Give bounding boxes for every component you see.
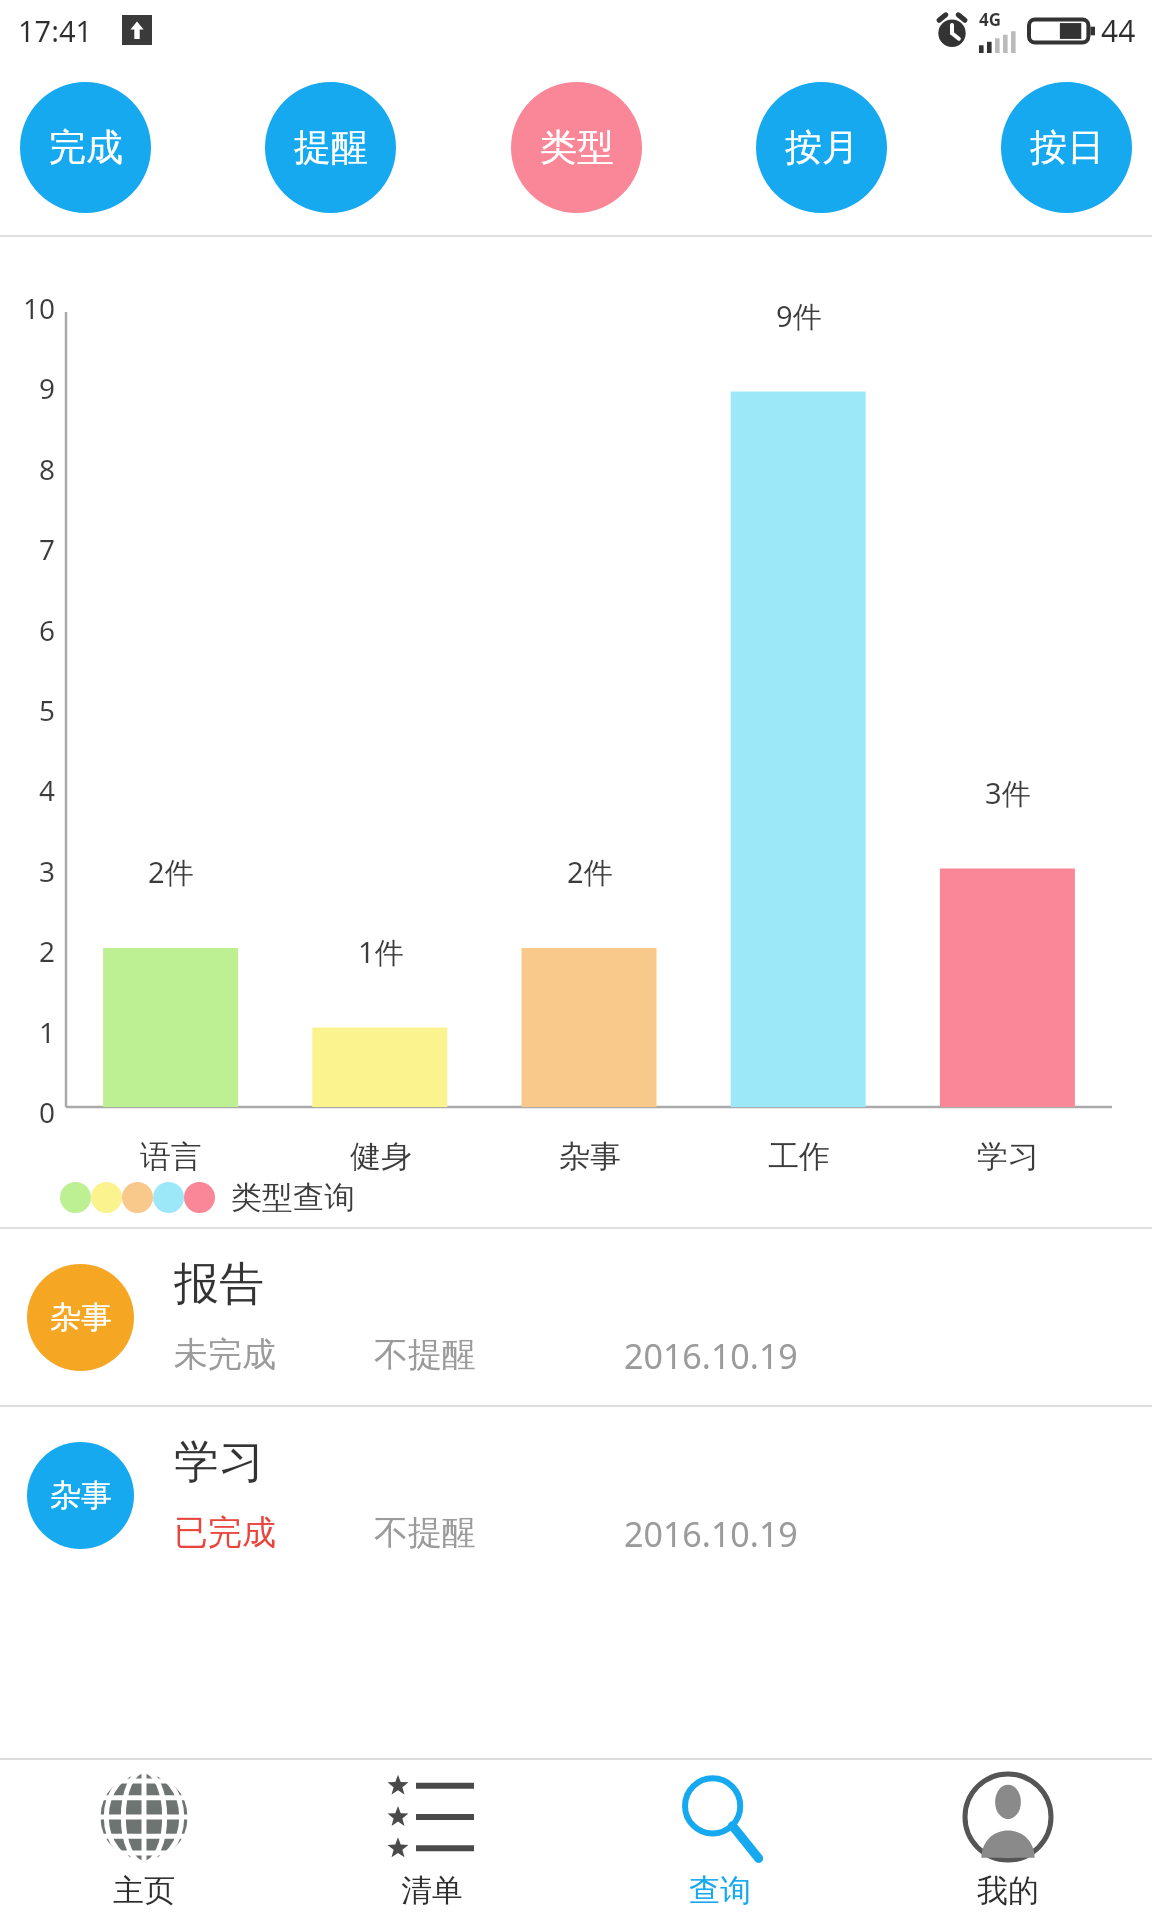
button[interactable]: 类型 <box>511 82 642 213</box>
staticText: 不提醒 <box>374 1333 624 1376</box>
staticText: 1件 <box>358 932 404 972</box>
button[interactable]: 按月 <box>756 82 887 213</box>
staticText: 2016.10.19 <box>624 1333 798 1379</box>
staticText: 工作 <box>768 1137 830 1176</box>
staticText: 4G <box>979 8 1002 31</box>
staticText: 健身 <box>350 1137 412 1176</box>
staticText: 8 <box>39 450 56 488</box>
button[interactable]: 按日 <box>1001 82 1132 213</box>
button[interactable]: 完成 <box>20 82 151 213</box>
button[interactable]: 清单 <box>288 1760 576 1920</box>
staticText: 杂事 <box>50 1298 112 1337</box>
staticText: 按月 <box>785 124 859 171</box>
staticText: 类型 <box>540 124 614 171</box>
button[interactable]: 提醒 <box>265 82 396 213</box>
staticText: 类型查询 <box>231 1178 355 1217</box>
staticText: 清单 <box>401 1871 463 1910</box>
staticText: 报告 <box>174 1256 264 1313</box>
staticText: 3件 <box>985 773 1031 813</box>
staticText: 3 <box>39 852 56 890</box>
staticText: 6 <box>39 611 56 649</box>
staticText: 2016.10.19 <box>624 1511 798 1557</box>
staticText: 7 <box>39 530 56 568</box>
button[interactable]: 杂事 <box>0 1229 1152 1405</box>
staticText: 语言 <box>140 1137 202 1176</box>
staticText: 我的 <box>977 1871 1039 1910</box>
staticText: 查询 <box>689 1871 751 1910</box>
staticText: 已完成 <box>174 1511 374 1554</box>
staticText: 提醒 <box>294 124 368 171</box>
staticText: 9 <box>39 369 56 407</box>
staticText: 未完成 <box>174 1333 374 1376</box>
staticText: 完成 <box>49 124 123 171</box>
staticText: 9件 <box>776 296 822 336</box>
staticText: 2件 <box>567 852 613 892</box>
staticText: 杂事 <box>559 1137 621 1176</box>
button[interactable]: 杂事 <box>0 1407 1152 1583</box>
button[interactable]: 查询 <box>576 1760 864 1920</box>
staticText: 按日 <box>1030 124 1104 171</box>
staticText: 10 <box>23 289 56 327</box>
staticText: 学习 <box>174 1434 264 1491</box>
staticText: 1 <box>39 1013 56 1051</box>
staticText: 5 <box>39 691 56 729</box>
staticText: 不提醒 <box>374 1511 624 1554</box>
button[interactable]: 主页 <box>0 1760 288 1920</box>
staticText: 4 <box>39 771 56 809</box>
staticText: 学习 <box>977 1137 1039 1176</box>
button[interactable]: 我的 <box>864 1760 1152 1920</box>
staticText: 0 <box>39 1093 56 1131</box>
staticText: 44 <box>1101 10 1136 51</box>
staticText: 主页 <box>113 1871 175 1910</box>
staticText: 杂事 <box>50 1476 112 1515</box>
staticText: 2件 <box>148 852 194 892</box>
staticText: 17:41 <box>18 11 93 50</box>
staticText: 2 <box>39 932 56 970</box>
